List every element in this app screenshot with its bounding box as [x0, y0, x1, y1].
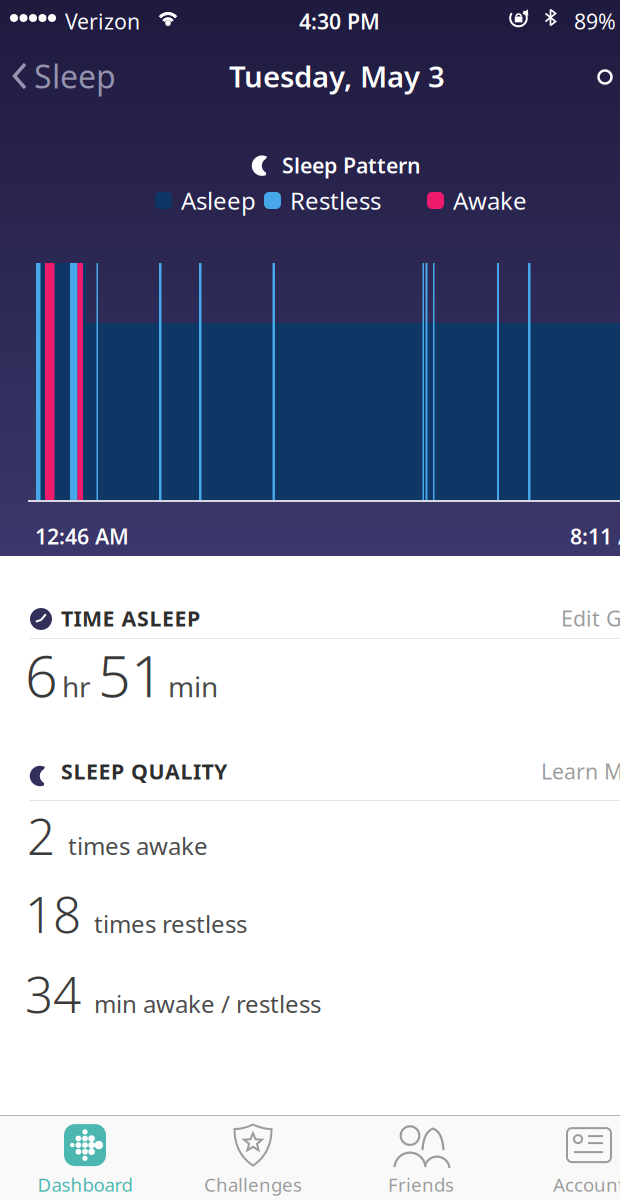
button[interactable]: Account	[509, 1118, 620, 1200]
staticText: 89%	[574, 7, 616, 35]
button[interactable]: Challenges	[173, 1118, 333, 1200]
button[interactable]: Edit Goal	[561, 604, 620, 632]
staticText: min awake / restless	[94, 988, 321, 1019]
button[interactable]: Learn More	[541, 757, 620, 785]
staticText: 51	[98, 637, 164, 713]
staticText: 12:46 AM	[35, 522, 129, 550]
staticText: Friends	[388, 1172, 454, 1197]
staticText: Sleep	[34, 55, 116, 97]
button[interactable]: Friends	[341, 1118, 501, 1200]
staticText: Asleep	[181, 185, 256, 216]
staticText: times restless	[94, 908, 247, 939]
button[interactable]: Dashboard	[5, 1118, 165, 1200]
staticText: times awake	[68, 830, 208, 861]
staticText: Restless	[290, 185, 381, 216]
staticText: Account	[553, 1172, 620, 1197]
staticText: 6	[25, 637, 58, 713]
staticText: 2	[27, 803, 55, 868]
staticText: Learn More	[541, 757, 620, 785]
staticText: Awake	[453, 185, 527, 216]
staticText: TIME ASLEEP	[61, 604, 200, 632]
staticText: Edit Goal	[561, 604, 620, 632]
staticText: Verizon	[65, 7, 140, 35]
staticText: 4:30 PM	[299, 7, 380, 35]
staticText: Challenges	[204, 1172, 302, 1197]
button[interactable]: Sleep	[0, 44, 116, 108]
staticText: Dashboard	[37, 1172, 132, 1197]
staticText: 8:11 AM	[570, 522, 620, 550]
staticText: min	[168, 668, 218, 705]
staticText: 18	[25, 881, 81, 946]
staticText: SLEEP QUALITY	[61, 757, 227, 785]
button[interactable]	[590, 62, 620, 92]
staticText: Tuesday, May 3	[229, 56, 445, 95]
staticText: 34	[25, 961, 81, 1026]
staticText: hr	[62, 668, 91, 705]
staticText: Sleep Pattern	[282, 151, 421, 179]
